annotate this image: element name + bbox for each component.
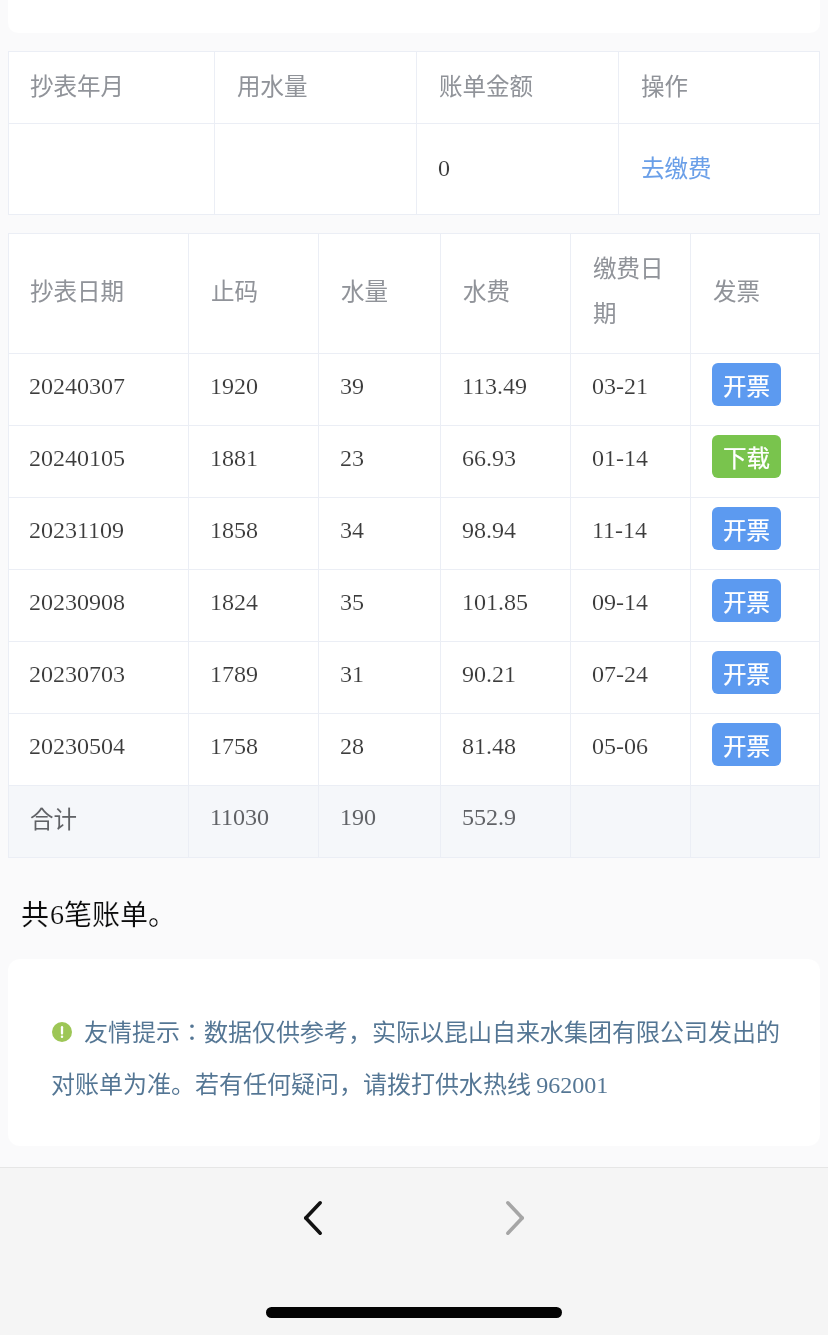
staticText: 39: [340, 373, 364, 400]
staticText: 190: [340, 804, 376, 831]
staticText: 81.48: [462, 733, 516, 760]
staticText: 0: [438, 155, 450, 182]
button[interactable]: Previous page: [277, 1182, 348, 1253]
button[interactable]: 开票: [712, 579, 781, 622]
button[interactable]: Next page: [479, 1182, 550, 1253]
staticText: 98.94: [462, 517, 516, 544]
staticText: 101.85: [462, 589, 528, 616]
staticText: 09-14: [592, 589, 648, 616]
staticText: 20231109: [29, 517, 125, 544]
staticText: 止码: [211, 273, 258, 307]
staticText: 合计: [30, 801, 77, 835]
staticText: 1789: [210, 661, 258, 688]
staticText: 抄表年月: [30, 68, 124, 102]
button[interactable]: 去缴费: [619, 124, 820, 214]
staticText: 账单金额: [439, 68, 533, 102]
staticText: 开票: [723, 656, 770, 690]
staticText: 20240105: [29, 445, 125, 472]
staticText: 03-21: [592, 373, 648, 400]
staticText: 开票: [723, 728, 770, 762]
staticText: 90.21: [462, 661, 516, 688]
staticText: 开票: [723, 512, 770, 546]
staticText: 20240307: [29, 373, 125, 400]
staticText: 笔账单。: [64, 893, 177, 930]
staticText: 开票: [723, 584, 770, 618]
staticText: 35: [340, 589, 364, 616]
staticText: 20230504: [29, 733, 125, 760]
button[interactable]: 开票: [712, 651, 781, 694]
staticText: 1824: [210, 589, 258, 616]
staticText: 操作: [641, 68, 688, 102]
staticText: 34: [340, 517, 364, 544]
staticText: 1920: [210, 373, 258, 400]
staticText: 去缴费: [641, 150, 712, 184]
staticText: 开票: [723, 368, 770, 402]
staticText: 07-24: [592, 661, 648, 688]
staticText: 11-14: [592, 517, 648, 544]
staticText: 共: [21, 893, 50, 930]
staticText: 113.49: [462, 373, 528, 400]
staticText: 66.93: [462, 445, 516, 472]
staticText: 下载: [723, 440, 770, 474]
staticText: 23: [340, 445, 364, 472]
staticText: 1858: [210, 517, 258, 544]
staticText: 友情提示：数据仅供参考，实际以昆山自来水集团有限公司发出的对账单为准。若有任何疑…: [51, 1013, 791, 1100]
staticText: 20230703: [29, 661, 125, 688]
staticText: 552.9: [462, 804, 516, 831]
staticText: 水费: [463, 273, 510, 307]
staticText: 05-06: [592, 733, 648, 760]
staticText: 发票: [713, 273, 760, 307]
staticText: 水量: [341, 273, 388, 307]
button[interactable]: 开票: [712, 507, 781, 550]
staticText: 6: [50, 899, 64, 930]
staticText: 31: [340, 661, 364, 688]
staticText: 28: [340, 733, 364, 760]
staticText: 抄表日期: [30, 273, 124, 307]
staticText: 11030: [210, 804, 270, 831]
button[interactable]: 开票: [712, 723, 781, 766]
button[interactable]: 下载: [712, 435, 781, 478]
staticText: 缴费日期: [593, 250, 682, 329]
staticText: 用水量: [237, 68, 308, 102]
staticText: 20230908: [29, 589, 125, 616]
staticText: 1881: [210, 445, 258, 472]
button[interactable]: 开票: [712, 363, 781, 406]
staticText: 1758: [210, 733, 258, 760]
staticText: 01-14: [592, 445, 648, 472]
